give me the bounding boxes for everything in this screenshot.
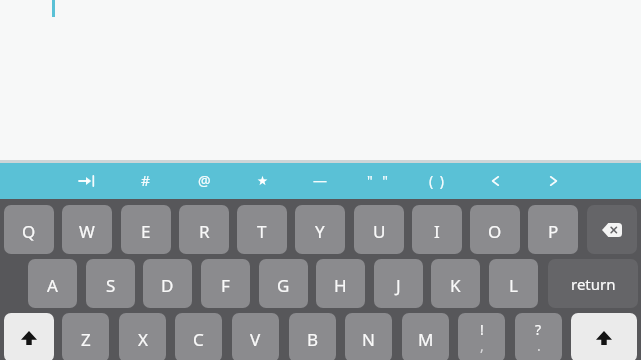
button[interactable] [233,162,291,199]
staticText: W [79,220,95,243]
staticText: L [509,274,518,297]
staticText: ( ) [429,171,446,190]
staticText: — [313,171,327,190]
staticText: P [548,220,559,243]
button[interactable]: U [354,205,404,254]
staticText: J [396,274,401,297]
staticText: V [250,328,261,351]
staticText: X [138,328,148,351]
staticText: H [334,274,347,297]
staticText: T [257,220,267,243]
staticText: Q [22,220,36,243]
staticText: O [488,220,502,243]
staticText: K [450,274,461,297]
staticText: G [277,274,290,297]
button[interactable]: L [489,259,538,308]
button[interactable]: Y [295,205,345,254]
button[interactable]: W [62,205,112,254]
staticText: N [362,328,375,351]
button[interactable]: I [412,205,462,254]
button[interactable]: ! [458,313,505,360]
button[interactable]: H [316,259,365,308]
button[interactable]: Z [62,313,109,360]
staticText: B [307,328,319,351]
button[interactable]: M [402,313,449,360]
staticText: D [161,274,174,297]
staticText: ? [535,320,542,339]
staticText: @ [198,171,211,190]
button[interactable]: @ [175,162,233,199]
staticText: # [141,171,151,190]
button[interactable]: B [289,313,336,360]
staticText: E [141,220,151,243]
button[interactable]: A [28,259,77,308]
button[interactable]: N [345,313,392,360]
button[interactable]: D [143,259,192,308]
button[interactable]: — [291,162,349,199]
staticText: R [199,220,210,243]
button[interactable]: R [179,205,229,254]
staticText: ! [480,320,484,339]
button[interactable]: E [121,205,171,254]
staticText: M [418,328,434,351]
button[interactable]: S [86,259,135,308]
staticText: S [106,274,116,297]
staticText: . [537,336,541,355]
staticText: " " [367,171,392,190]
staticText: return [571,274,616,294]
button[interactable]: V [232,313,279,360]
staticText: A [47,274,58,297]
button[interactable] [58,162,116,199]
button[interactable]: C [175,313,222,360]
staticText: , [480,336,484,355]
button[interactable]: K [431,259,480,308]
staticText: I [434,220,440,243]
staticText: Y [315,220,325,243]
button[interactable]: J [374,259,423,308]
button[interactable]: ( ) [408,162,466,199]
button[interactable]: X [119,313,166,360]
staticText: F [221,274,230,297]
button[interactable]: Q [4,205,54,254]
button[interactable]: ? [515,313,562,360]
button[interactable] [524,162,582,199]
button[interactable]: " " [350,162,408,199]
button[interactable]: P [528,205,578,254]
button[interactable]: F [201,259,250,308]
button[interactable]: T [237,205,287,254]
staticText: Z [81,328,91,351]
button[interactable]: return [548,259,638,308]
button[interactable] [4,313,54,360]
staticText: U [373,220,386,243]
staticText: C [193,328,204,351]
button[interactable] [571,313,637,360]
button[interactable]: G [259,259,308,308]
button[interactable]: O [470,205,520,254]
button[interactable] [587,205,637,254]
button[interactable] [466,162,524,199]
button[interactable]: # [117,162,175,199]
